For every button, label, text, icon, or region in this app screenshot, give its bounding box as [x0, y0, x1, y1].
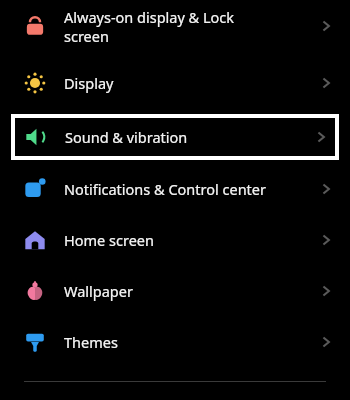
staticText: Display	[64, 73, 114, 93]
staticText: Home screen	[64, 230, 154, 250]
staticText: Themes	[64, 332, 118, 352]
button[interactable]: Always-on display & Lock screen	[0, 0, 350, 52]
button[interactable]: Home screen	[0, 218, 350, 262]
button[interactable]: Display	[0, 62, 350, 104]
button[interactable]: Themes	[0, 320, 350, 364]
staticText: Always-on display & Lock screen	[64, 7, 235, 46]
button[interactable]: Notifications & Control center	[0, 167, 350, 211]
staticText: Notifications & Control center	[64, 179, 267, 199]
staticText: Sound & vibration	[65, 127, 188, 147]
button[interactable]: Wallpaper	[0, 269, 350, 313]
staticText: Wallpaper	[64, 281, 133, 301]
button[interactable]: Sound & vibration	[15, 118, 335, 156]
